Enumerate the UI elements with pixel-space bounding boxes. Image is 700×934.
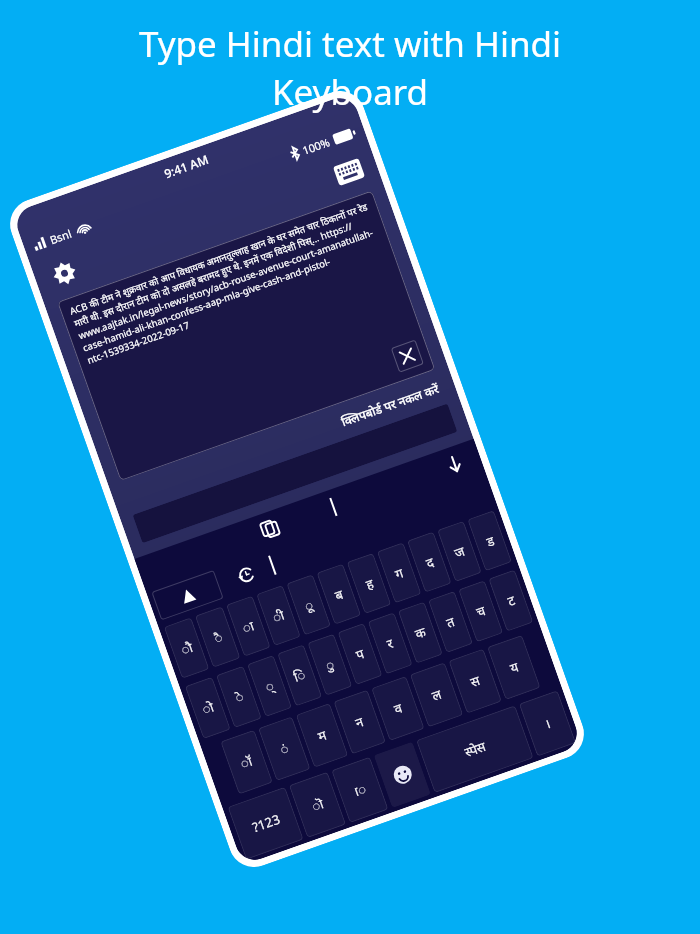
button[interactable]: स (448, 648, 502, 714)
staticText: ो (200, 697, 217, 718)
staticText: Type Hindi text with Hindi Keyboard (18, 20, 682, 115)
button[interactable]: ा (226, 596, 271, 657)
staticText: ॉ (238, 752, 255, 773)
button[interactable]: Keyboard (326, 149, 372, 195)
button[interactable]: स्पेस (416, 705, 534, 793)
staticText: क (413, 622, 428, 643)
button[interactable]: ु (307, 634, 352, 696)
button[interactable]: Settings (41, 250, 87, 296)
button[interactable]: ल (410, 662, 463, 727)
button[interactable]: ि (277, 644, 322, 706)
button[interactable]: े (216, 666, 262, 728)
staticText: क्लिपबोर्ड पर नकल करें (339, 380, 441, 429)
button[interactable]: ू (286, 574, 331, 635)
staticText: 100% (300, 134, 333, 158)
button[interactable]: Copy (251, 510, 289, 548)
button[interactable]: व (371, 676, 425, 741)
staticText: Bsnl (48, 225, 74, 247)
button[interactable]: म (296, 703, 348, 768)
staticText: ा (240, 616, 257, 637)
button[interactable]: Close (391, 339, 424, 373)
staticText: प (353, 644, 367, 664)
button[interactable]: ॊ (289, 772, 346, 838)
staticText: न (353, 712, 366, 732)
button[interactable]: क्लिपबोर्ड पर नकल करें (108, 370, 445, 519)
staticText: र (384, 634, 396, 653)
button[interactable]: ?123 (227, 787, 304, 860)
staticText: ॎ (352, 779, 369, 800)
staticText: 9:41 AM (162, 151, 210, 181)
button[interactable]: ॎ (331, 757, 388, 823)
staticText: स (468, 671, 482, 691)
button[interactable]: ौ (164, 617, 209, 679)
button[interactable]: ह (347, 553, 391, 614)
button[interactable]: ड (467, 510, 512, 571)
staticText: ज (452, 542, 467, 562)
button[interactable]: क (398, 602, 443, 664)
staticText: म (315, 725, 329, 745)
staticText: ं (277, 739, 291, 758)
button[interactable]: History (229, 558, 263, 591)
button[interactable]: ॉ (220, 730, 273, 794)
staticText: । (542, 714, 553, 733)
button[interactable]: च (458, 580, 503, 642)
button[interactable]: Emoji (374, 742, 431, 808)
button[interactable]: र (368, 612, 413, 674)
staticText: ु (323, 655, 337, 674)
staticText: ACB की टीम ने शुक्रवार को आप विधायक अमान… (68, 200, 387, 367)
button[interactable]: ब (316, 563, 361, 625)
staticText: ौ (179, 638, 196, 659)
staticText: व (392, 698, 405, 718)
staticText: े (233, 687, 246, 706)
staticText: ग (393, 563, 406, 583)
staticText: ी (270, 605, 287, 626)
button[interactable]: Shift (151, 570, 224, 620)
button[interactable]: न (333, 690, 386, 754)
button[interactable]: ज (437, 521, 482, 582)
staticText: ड (484, 531, 497, 551)
staticText: द (424, 553, 436, 572)
button[interactable]: ट (488, 569, 533, 632)
button[interactable]: प (337, 623, 383, 685)
staticText: ?123 (250, 810, 282, 836)
staticText: ल (429, 685, 444, 705)
button[interactable]: य (487, 635, 541, 700)
button[interactable]: ो (185, 677, 231, 739)
staticText: ब (332, 585, 346, 604)
staticText: ट (505, 591, 518, 610)
button[interactable]: ै (195, 606, 241, 668)
button[interactable]: । (519, 690, 576, 757)
staticText: स्पेस (462, 737, 489, 761)
staticText: त (444, 612, 457, 632)
button[interactable]: ् (247, 655, 292, 717)
staticText: च (474, 601, 488, 621)
button[interactable]: त (428, 591, 473, 653)
button[interactable]: ACB की टीम ने शुक्रवार को आप विधायक अमान… (57, 190, 435, 481)
staticText: य (507, 657, 521, 677)
button[interactable]: ी (256, 585, 301, 646)
staticText: ै (212, 627, 225, 647)
button[interactable]: ग (377, 542, 422, 603)
staticText: ् (263, 676, 276, 696)
staticText: ॊ (309, 794, 327, 815)
button[interactable]: द (407, 531, 452, 593)
button[interactable]: Hide keyboard (435, 445, 473, 483)
staticText: ि (291, 665, 308, 686)
staticText: ू (302, 595, 316, 615)
button[interactable]: ं (258, 716, 311, 781)
staticText: ह (363, 574, 376, 593)
